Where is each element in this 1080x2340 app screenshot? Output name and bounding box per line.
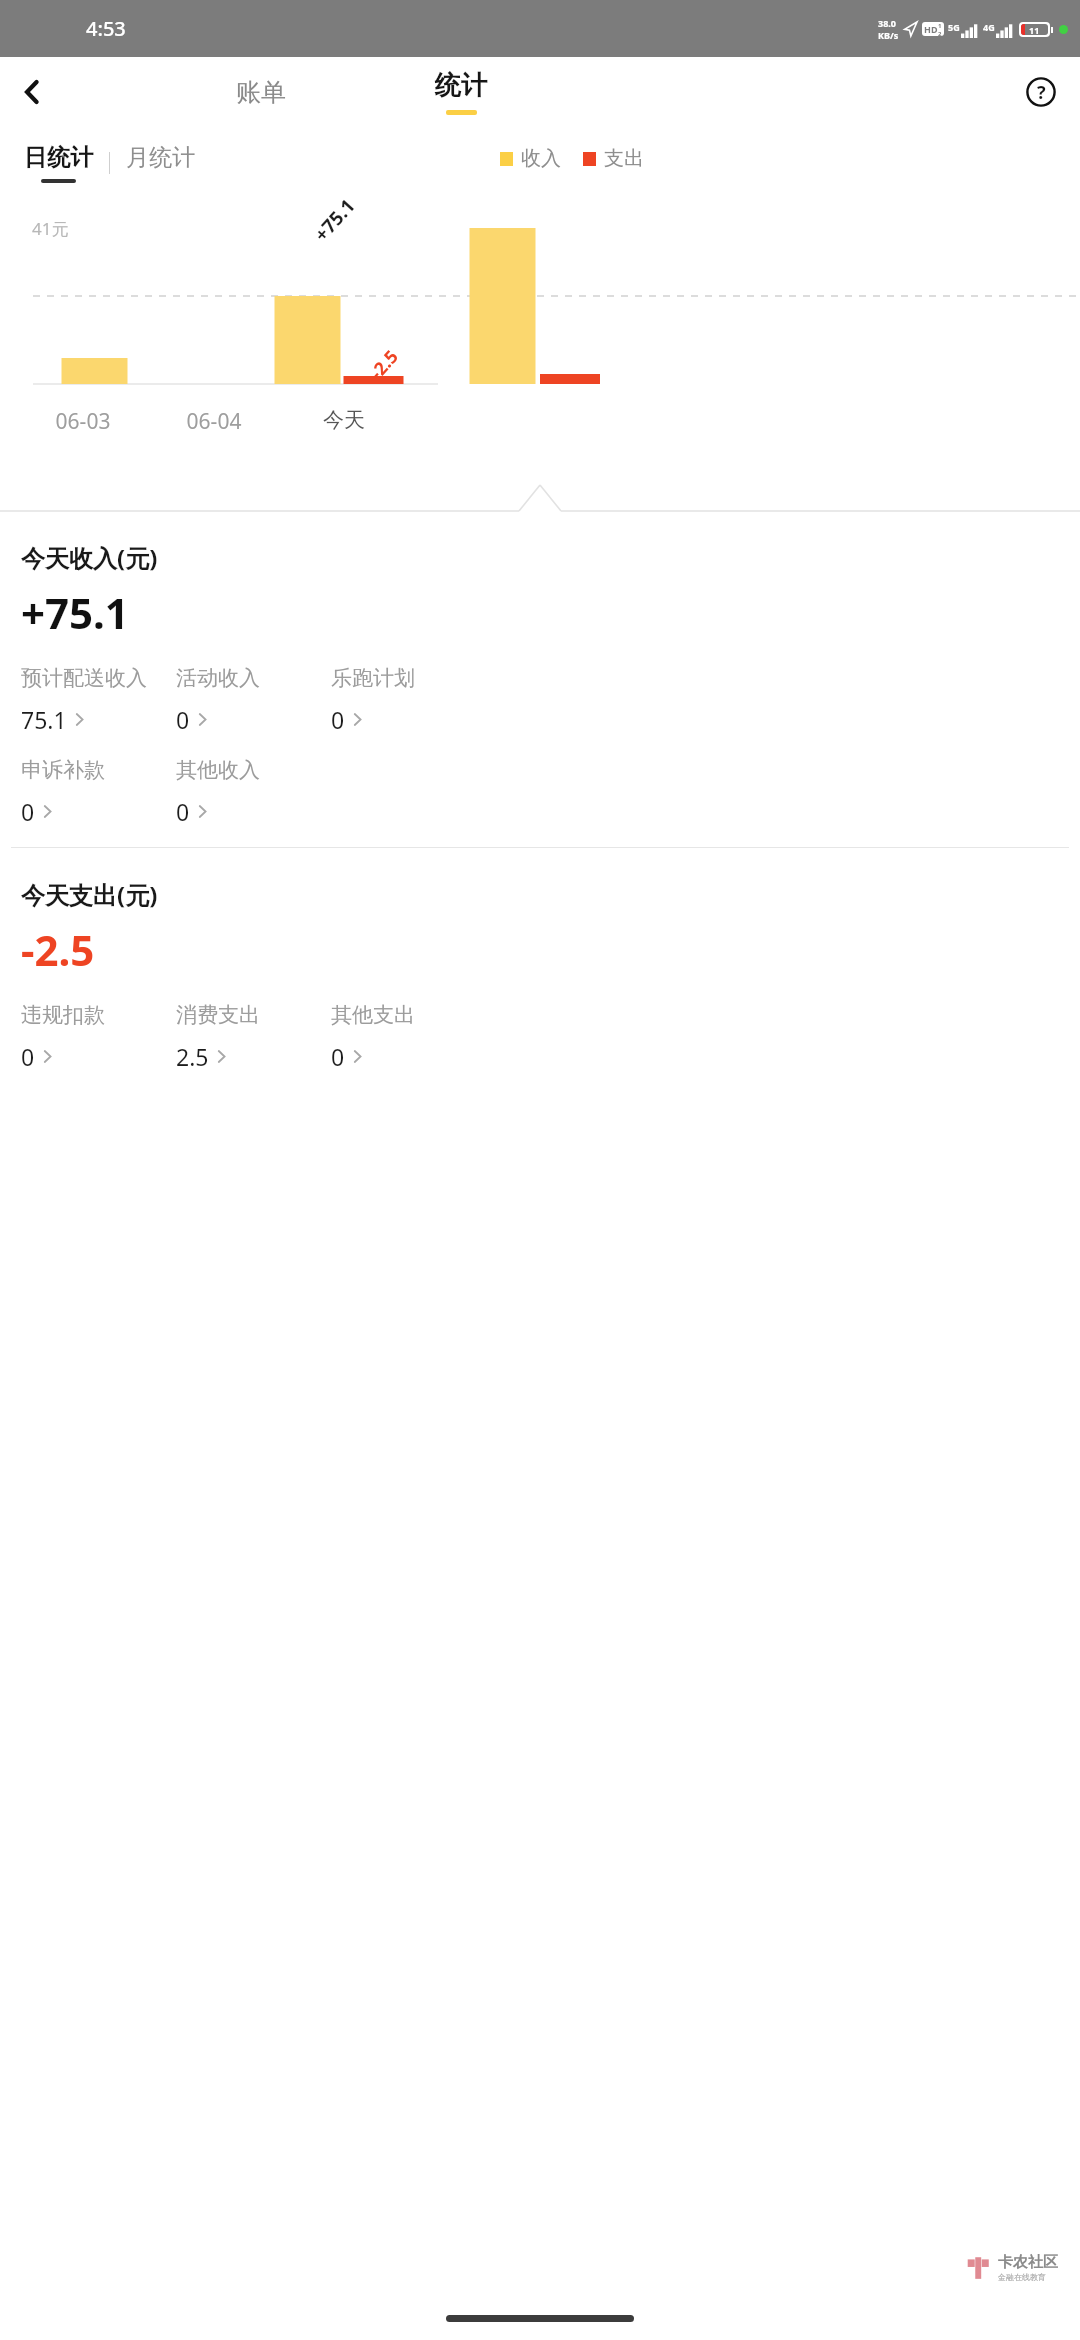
staticText: 其他收入 bbox=[176, 757, 260, 783]
staticText: 4G bbox=[983, 21, 995, 33]
staticText: 38.0 bbox=[878, 17, 896, 29]
staticText: 金融在线教育 bbox=[998, 2272, 1046, 2282]
staticText: 06-04 bbox=[144, 407, 284, 436]
staticText: -2.5 bbox=[21, 921, 95, 978]
staticText: 1 bbox=[938, 22, 942, 30]
button[interactable]: 账单 bbox=[196, 57, 326, 127]
button[interactable]: 其他收入 bbox=[176, 757, 331, 827]
staticText: 其他支出 bbox=[331, 1002, 415, 1028]
button[interactable]: Help bbox=[1016, 67, 1066, 117]
button[interactable]: 申诉补款 bbox=[21, 757, 176, 827]
staticText: 支出 bbox=[604, 146, 644, 171]
staticText: 日统计 bbox=[24, 143, 93, 172]
staticText: 41元 bbox=[32, 217, 69, 240]
staticText: 75.1 bbox=[21, 704, 67, 735]
staticText: 0 bbox=[176, 796, 190, 827]
button[interactable]: 活动收入 bbox=[176, 665, 331, 735]
button[interactable]: 统计 bbox=[396, 57, 526, 127]
staticText: KB/s bbox=[878, 29, 899, 41]
button[interactable]: 违规扣款 bbox=[21, 1002, 176, 1072]
staticText: 06-03 bbox=[22, 407, 144, 436]
staticText: 11 bbox=[1029, 24, 1040, 35]
staticText: 收入 bbox=[521, 146, 561, 171]
staticText: 违规扣款 bbox=[21, 1002, 105, 1028]
staticText: ? bbox=[1037, 80, 1046, 105]
staticText: +75.1 bbox=[21, 584, 129, 641]
staticText: 0 bbox=[176, 704, 190, 735]
staticText: 账单 bbox=[236, 77, 286, 108]
staticText: 今天支出(元) bbox=[21, 878, 158, 911]
staticText: 统计 bbox=[435, 69, 487, 102]
staticText: HD bbox=[924, 23, 938, 35]
button[interactable]: 日统计 bbox=[20, 139, 97, 187]
staticText: 2 bbox=[938, 30, 942, 36]
staticText: 0 bbox=[331, 704, 345, 735]
staticText: 今天 bbox=[284, 407, 404, 433]
button[interactable]: 乐跑计划 bbox=[331, 665, 486, 735]
staticText: 消费支出 bbox=[176, 1002, 260, 1028]
staticText: 月统计 bbox=[126, 143, 195, 172]
staticText: 4:53 bbox=[86, 15, 126, 42]
staticText: 0 bbox=[331, 1041, 345, 1072]
staticText: -2.5 bbox=[364, 344, 404, 385]
button[interactable]: 月统计 bbox=[122, 139, 199, 187]
button[interactable]: 其他支出 bbox=[331, 1002, 486, 1072]
staticText: 2.5 bbox=[176, 1041, 209, 1072]
button[interactable]: Back bbox=[8, 67, 58, 117]
staticText: 今天收入(元) bbox=[21, 541, 158, 574]
staticText: 0 bbox=[21, 796, 35, 827]
staticText: 申诉补款 bbox=[21, 757, 105, 783]
staticText: 0 bbox=[21, 1041, 35, 1072]
staticText: 活动收入 bbox=[176, 665, 260, 691]
staticText: 卡农社区 bbox=[998, 2253, 1058, 2272]
staticText: 乐跑计划 bbox=[331, 665, 415, 691]
staticText: 5G bbox=[948, 21, 960, 33]
staticText: +75.1 bbox=[308, 193, 360, 247]
button[interactable]: 预计配送收入 bbox=[21, 665, 176, 735]
staticText: 预计配送收入 bbox=[21, 665, 147, 691]
button[interactable]: 消费支出 bbox=[176, 1002, 331, 1072]
